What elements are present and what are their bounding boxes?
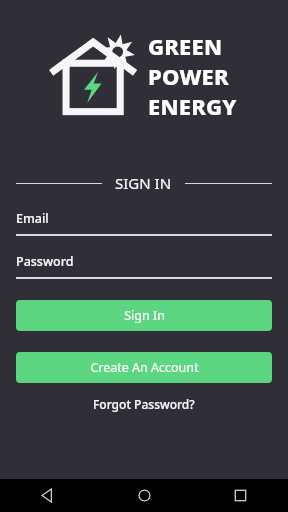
staticText: Sign In: [124, 307, 165, 324]
button[interactable]: Home: [96, 479, 192, 512]
staticText: Email: [16, 210, 49, 227]
staticText: Forgot Password?: [93, 396, 195, 412]
staticText: Password: [16, 253, 74, 270]
button[interactable]: Create An Account: [16, 352, 272, 383]
button[interactable]: Back: [0, 479, 96, 512]
staticText: ENERGY: [148, 91, 237, 121]
button[interactable]: Recents: [192, 479, 288, 512]
button[interactable]: Sign In: [16, 300, 272, 331]
staticText: GREEN: [148, 31, 223, 61]
staticText: Create An Account: [90, 359, 199, 376]
button[interactable]: Forgot Password?: [85, 394, 203, 414]
staticText: POWER: [148, 61, 229, 91]
staticText: SIGN IN: [115, 173, 172, 193]
